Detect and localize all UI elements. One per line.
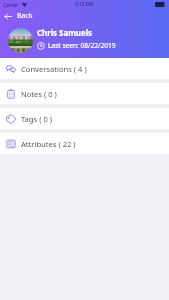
button[interactable]: Notes ( 0 ) [0, 83, 169, 104]
button[interactable]: Back [4, 10, 33, 22]
staticText: Conversations ( 4 ) [21, 64, 87, 74]
staticText: Chris Samuels [37, 28, 93, 39]
staticText: Attributes ( 22 ) [21, 139, 76, 149]
staticText: 3:12 PM [75, 1, 94, 8]
staticText: Tags ( 0 ) [21, 114, 53, 124]
staticText: Carrier [3, 2, 19, 8]
staticText: Back [17, 11, 33, 21]
staticText: Last seen: 08/22/2019 [48, 41, 116, 50]
button[interactable]: Attributes ( 22 ) [0, 133, 169, 154]
staticText: Notes ( 0 ) [21, 89, 57, 99]
button[interactable]: Tags ( 0 ) [0, 108, 169, 129]
button[interactable]: Conversations ( 4 ) [0, 58, 169, 79]
